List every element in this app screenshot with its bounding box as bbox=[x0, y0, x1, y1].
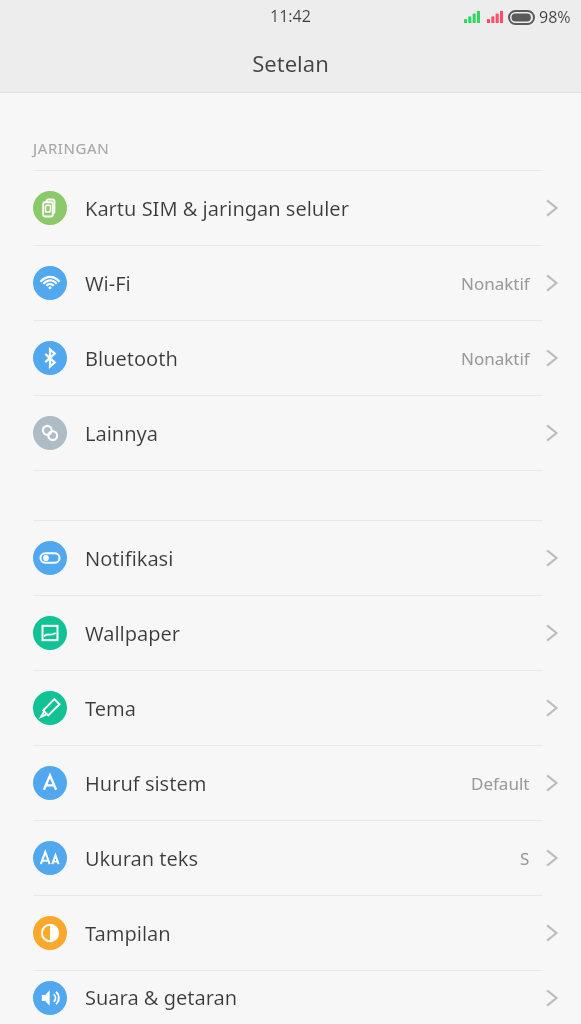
button[interactable]: Huruf sistem bbox=[0, 746, 581, 820]
button[interactable]: Kartu SIM & jaringan seluler bbox=[0, 171, 581, 245]
staticText: Tema bbox=[85, 695, 546, 722]
button[interactable]: Tampilan bbox=[0, 896, 581, 970]
button[interactable]: Wallpaper bbox=[0, 596, 581, 670]
staticText: 11:42 bbox=[270, 5, 311, 27]
staticText: Lainnya bbox=[85, 420, 546, 447]
button[interactable]: Bluetooth bbox=[0, 321, 581, 395]
staticText: Kartu SIM & jaringan seluler bbox=[85, 195, 546, 222]
staticText: Huruf sistem bbox=[85, 770, 471, 797]
button[interactable]: Suara & getaran bbox=[0, 971, 581, 1024]
staticText: Wi-Fi bbox=[85, 270, 461, 297]
staticText: Notifikasi bbox=[85, 545, 546, 572]
staticText: Suara & getaran bbox=[85, 984, 546, 1011]
staticText: 98% bbox=[539, 6, 571, 28]
staticText: Ukuran teks bbox=[85, 845, 520, 872]
staticText: Tampilan bbox=[85, 920, 546, 947]
staticText: S bbox=[520, 847, 530, 870]
button[interactable]: Notifikasi bbox=[0, 521, 581, 595]
staticText: Bluetooth bbox=[85, 345, 461, 372]
button[interactable]: Ukuran teks bbox=[0, 821, 581, 895]
staticText: Default bbox=[471, 772, 530, 795]
button[interactable]: Lainnya bbox=[0, 396, 581, 470]
staticText: JARINGAN bbox=[33, 138, 110, 158]
staticText: Wallpaper bbox=[85, 620, 546, 647]
staticText: Nonaktif bbox=[461, 347, 530, 370]
button[interactable]: Wi-Fi bbox=[0, 246, 581, 320]
staticText: Nonaktif bbox=[461, 272, 530, 295]
staticText: Setelan bbox=[252, 48, 329, 78]
button[interactable]: Tema bbox=[0, 671, 581, 745]
